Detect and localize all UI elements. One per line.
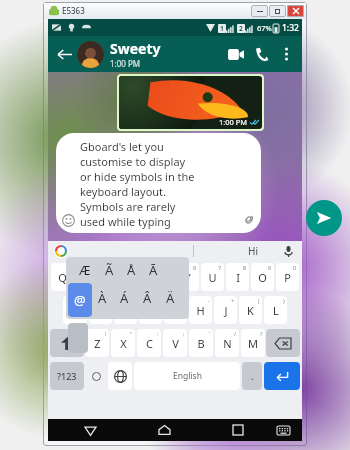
button[interactable]: K <box>239 296 262 324</box>
button[interactable]: Send <box>306 200 342 236</box>
button[interactable]: Change language <box>108 362 132 390</box>
button[interactable]: A <box>63 296 87 324</box>
staticText: U <box>208 270 217 285</box>
staticText: ) <box>283 297 285 304</box>
staticText: 1:00 PM <box>110 58 141 69</box>
button[interactable]: P <box>276 263 299 291</box>
staticText: E5363 <box>62 5 85 16</box>
staticText: Ā <box>149 261 158 279</box>
button[interactable]: F <box>139 296 162 324</box>
button[interactable]: Enter <box>264 362 300 390</box>
staticText: A <box>71 303 79 318</box>
staticText: Å <box>127 261 136 279</box>
button[interactable]: C <box>137 329 161 357</box>
button[interactable]: Window button <box>287 5 304 17</box>
button[interactable]: Home <box>150 419 178 441</box>
button[interactable]: Hi <box>233 243 273 259</box>
staticText: Symbols are rarely <box>80 199 176 214</box>
button[interactable]: Back <box>76 419 104 441</box>
button[interactable]: Profile photo <box>77 41 104 68</box>
button[interactable]: Google <box>54 244 68 258</box>
button[interactable]: Modifier key <box>242 362 262 390</box>
staticText: / <box>234 330 237 337</box>
button[interactable]: L <box>264 296 287 324</box>
staticText: 8 <box>243 264 247 271</box>
staticText: O <box>258 270 267 285</box>
staticText: @ <box>74 291 86 309</box>
button[interactable]: Window button <box>269 5 286 17</box>
staticText: 0 <box>293 264 297 271</box>
staticText: customise to display <box>80 154 186 169</box>
button[interactable]: Modifier key <box>50 329 84 357</box>
button[interactable]: Video call <box>223 41 249 67</box>
button[interactable]: T <box>151 263 174 291</box>
button[interactable]: X <box>111 329 135 357</box>
button[interactable]: D <box>114 296 137 324</box>
button[interactable]: Voice input <box>280 243 296 259</box>
button[interactable]: N <box>215 329 239 357</box>
button[interactable]: Attach <box>240 211 256 227</box>
staticText: Æ <box>79 261 91 279</box>
button[interactable]: @ <box>68 283 92 317</box>
button[interactable]: More options <box>275 43 297 65</box>
button[interactable]: Modifier key <box>50 362 84 390</box>
staticText: used while typing <box>80 214 171 229</box>
button[interactable]: Photo message <box>119 76 262 129</box>
button[interactable]: Recents <box>224 419 252 441</box>
staticText: ' <box>209 330 211 337</box>
button[interactable]: H <box>189 296 212 324</box>
staticText: Ä <box>166 289 175 307</box>
button[interactable]: S <box>89 296 112 324</box>
button[interactable]: Hide keyboard <box>270 419 296 441</box>
button[interactable]: E <box>101 263 124 291</box>
button[interactable]: U <box>201 263 224 291</box>
staticText: Z <box>94 336 101 351</box>
staticText: keyboard layout. <box>80 184 166 199</box>
button[interactable]: G <box>164 296 187 324</box>
button[interactable]: I <box>226 263 249 291</box>
staticText: + <box>231 297 235 304</box>
staticText: 9 <box>268 264 272 271</box>
button[interactable]: M <box>241 329 265 357</box>
button[interactable]: Window button <box>251 5 268 17</box>
button[interactable]: W <box>76 263 99 291</box>
button[interactable]: Q <box>51 263 74 291</box>
staticText: Y <box>184 270 191 285</box>
staticText: 6 <box>193 264 197 271</box>
staticText: J <box>224 303 228 318</box>
button[interactable]: Voice call <box>249 41 275 67</box>
button[interactable]: Emoji <box>61 213 76 228</box>
staticText <box>80 289 84 307</box>
staticText: ? <box>260 330 263 337</box>
staticText: 1:00 PM <box>219 117 248 127</box>
staticText: C <box>146 336 153 351</box>
button[interactable]: B <box>189 329 213 357</box>
button[interactable]: J <box>214 296 237 324</box>
staticText: ! <box>105 330 107 337</box>
staticText: Gboard's let you <box>80 139 164 154</box>
button[interactable]: Back <box>53 43 75 65</box>
staticText: 7 <box>218 264 222 271</box>
button[interactable]: Emoji <box>56 133 261 233</box>
staticText: ; <box>183 330 185 337</box>
staticText: @ <box>80 297 85 304</box>
button[interactable]: English <box>134 362 240 390</box>
staticText: M <box>248 336 258 351</box>
button[interactable]: Sweety <box>110 39 223 69</box>
button[interactable]: Emoji key <box>86 362 106 390</box>
staticText: - <box>208 297 210 304</box>
button[interactable]: V <box>163 329 187 357</box>
button[interactable]: O <box>251 263 274 291</box>
button[interactable]: Modifier key <box>266 329 300 357</box>
button[interactable]: R <box>126 263 149 291</box>
button[interactable]: Z <box>85 329 109 357</box>
button[interactable]: Y <box>176 263 199 291</box>
staticText: H <box>196 303 205 318</box>
